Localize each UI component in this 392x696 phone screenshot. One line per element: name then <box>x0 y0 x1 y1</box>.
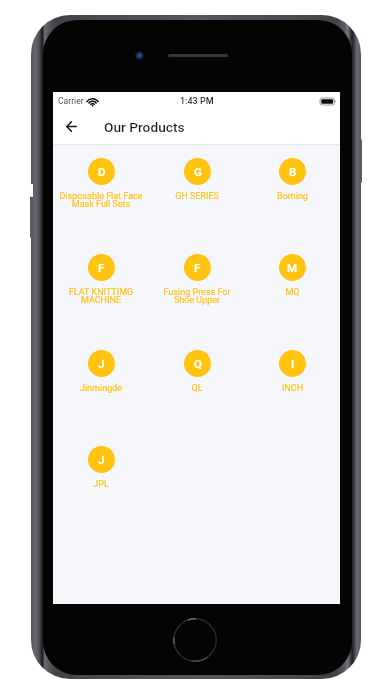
staticText: FLAT KNITTIMG MACHINE <box>53 287 149 306</box>
button[interactable]: F <box>149 248 245 344</box>
staticText: JPL <box>53 479 149 490</box>
staticText: INCH <box>245 383 340 394</box>
staticText: B <box>289 165 297 178</box>
button[interactable]: I <box>245 344 340 440</box>
staticText: J <box>98 357 105 370</box>
staticText: I <box>291 357 295 370</box>
staticText: QL <box>149 383 245 394</box>
staticText: MQ <box>245 287 340 298</box>
staticText: Disposable Flat Face Mask Full Sets <box>53 191 149 210</box>
staticText: 1:43 PM <box>180 96 214 107</box>
button[interactable]: J <box>53 344 149 440</box>
button[interactable]: D <box>53 152 149 248</box>
button[interactable]: Q <box>149 344 245 440</box>
staticText: Our Products <box>104 119 185 135</box>
staticText: F <box>98 261 105 274</box>
button[interactable]: G <box>149 152 245 248</box>
staticText: D <box>98 165 106 178</box>
staticText: M <box>287 261 298 274</box>
staticText: Boming <box>245 191 340 202</box>
staticText: F <box>194 261 201 274</box>
button[interactable]: B <box>245 152 340 248</box>
staticText: Jinmingde <box>53 383 149 394</box>
staticText: Carrier <box>58 96 84 106</box>
staticText: J <box>98 453 105 466</box>
staticText: GH SERIES <box>149 191 245 202</box>
button[interactable]: Back <box>53 110 88 144</box>
staticText: Q <box>194 357 202 370</box>
button[interactable]: M <box>245 248 340 344</box>
staticText: G <box>194 165 202 178</box>
staticText: Fusing Press For Shoe Upper <box>149 287 245 306</box>
button[interactable]: F <box>53 248 149 344</box>
button[interactable]: J <box>53 440 149 536</box>
